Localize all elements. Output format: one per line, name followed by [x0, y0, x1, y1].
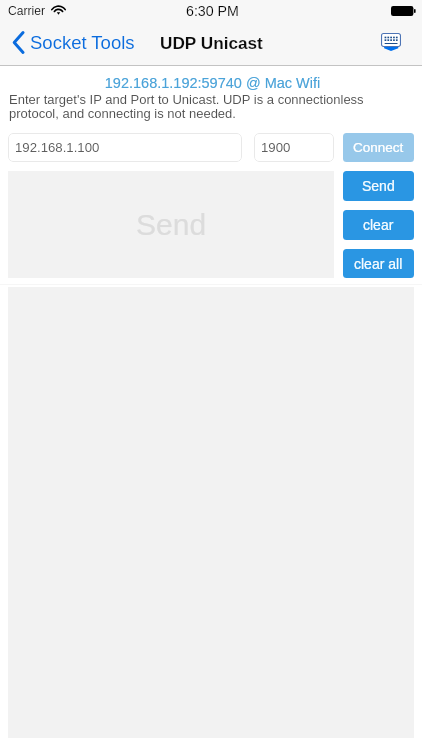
button[interactable]: 192.168.1.100	[8, 133, 242, 162]
staticText: Send	[362, 178, 395, 194]
button[interactable]: clear	[343, 210, 414, 240]
button[interactable]: Send	[343, 171, 414, 201]
staticText: Carrier	[8, 4, 45, 18]
staticText: 1900	[261, 140, 291, 155]
staticText: Send	[136, 208, 207, 242]
staticText: 6:30 PM	[186, 3, 239, 19]
button[interactable]: 1900	[254, 133, 334, 162]
button[interactable]: Hide keyboard	[376, 27, 406, 57]
staticText: Connect	[353, 140, 404, 155]
staticText: Socket Tools	[30, 32, 135, 53]
staticText: UDP Unicast	[160, 33, 263, 52]
staticText: Enter target's IP and Port to Unicast. U…	[9, 92, 370, 121]
button[interactable]: Socket Tools	[12, 31, 135, 54]
staticText: clear all	[354, 256, 403, 272]
staticText: 192.168.1.192:59740 @ Mac Wifi	[3, 75, 422, 91]
staticText: clear	[363, 217, 394, 233]
staticText: 192.168.1.100	[15, 140, 100, 155]
button[interactable]: Connect	[343, 133, 414, 162]
button[interactable]: clear all	[343, 249, 414, 278]
